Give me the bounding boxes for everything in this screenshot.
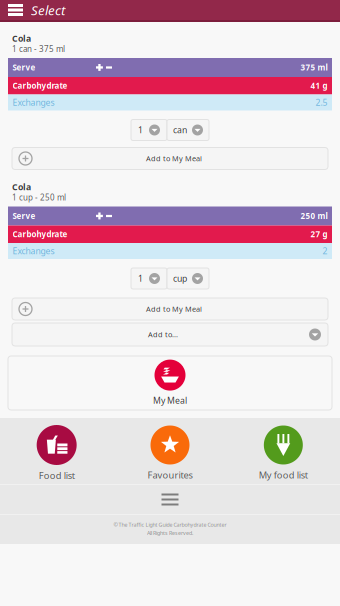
- button[interactable]: Favourites: [113, 425, 227, 481]
- button[interactable]: Add to My Meal: [12, 147, 328, 169]
- staticText: Add to My Meal: [146, 153, 202, 163]
- staticText: My Meal: [153, 395, 187, 406]
- staticText: cup: [173, 273, 187, 284]
- staticText: 2.5: [315, 97, 327, 108]
- button[interactable]: Menu: [7, 0, 24, 20]
- button[interactable]: cup: [167, 268, 209, 289]
- staticText: Food list: [39, 469, 75, 482]
- staticText: Favourites: [147, 468, 192, 481]
- staticText: 1: [138, 273, 143, 284]
- staticText: Cola: [12, 33, 31, 44]
- staticText: 250 ml: [300, 211, 327, 221]
- staticText: 1 cup - 250 ml: [12, 192, 66, 203]
- staticText: Add to My Meal: [146, 304, 202, 314]
- staticText: Exchanges: [12, 97, 54, 108]
- button[interactable]: Add to...: [12, 323, 328, 346]
- staticText: 41 g: [310, 80, 327, 91]
- button[interactable]: can: [167, 119, 209, 140]
- button[interactable]: Food list: [0, 425, 113, 482]
- button[interactable]: 1: [131, 268, 167, 289]
- staticText: 1 can - 375 ml: [12, 44, 65, 54]
- staticText: Add to...: [148, 329, 178, 339]
- staticText: My food list: [259, 468, 308, 481]
- staticText: 2: [322, 245, 327, 257]
- staticText: Select: [31, 1, 65, 19]
- button[interactable]: 1: [131, 119, 167, 140]
- button[interactable]: My Meal: [8, 356, 332, 410]
- staticText: can: [173, 124, 187, 136]
- staticText: 1: [138, 124, 143, 136]
- button[interactable]: More options: [149, 485, 190, 513]
- staticText: Carbohydrate: [12, 229, 67, 240]
- staticText: © The Traffic Light Guide Carbohydrate C…: [113, 521, 226, 528]
- button[interactable]: My food list: [227, 425, 340, 481]
- staticText: Exchanges: [12, 245, 54, 257]
- staticText: Cola: [12, 181, 31, 193]
- staticText: 375 ml: [300, 62, 327, 73]
- staticText: Serve: [12, 211, 35, 221]
- staticText: 27 g: [310, 229, 327, 240]
- button[interactable]: Add to My Meal: [12, 298, 328, 320]
- staticText: All Rights Reserved.: [147, 529, 193, 537]
- staticText: Carbohydrate: [12, 80, 67, 91]
- staticText: Serve: [12, 62, 35, 73]
